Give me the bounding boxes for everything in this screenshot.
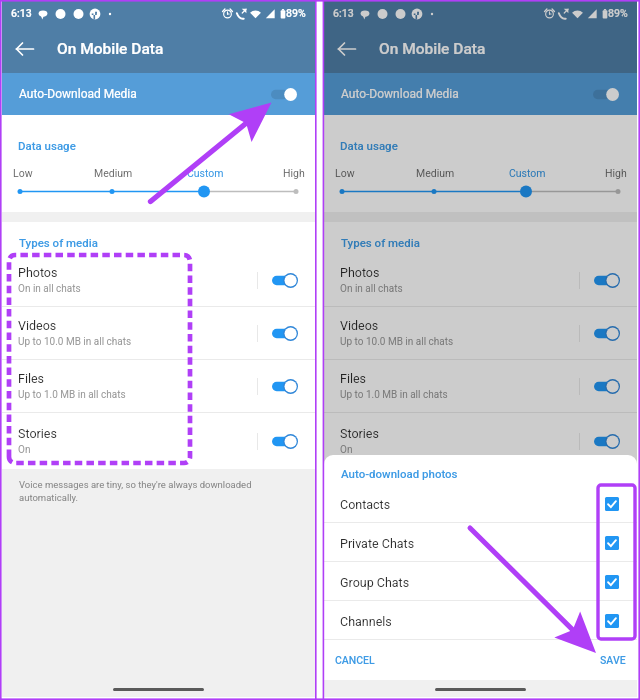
- button[interactable]: Files toggle: [594, 379, 620, 394]
- staticText: Videos: [18, 318, 57, 333]
- button[interactable]: Group Chats: [324, 562, 637, 600]
- staticText: Custom: [509, 167, 546, 179]
- staticText: On Mobile Data: [379, 40, 486, 58]
- staticText: Up to 1.0 MB in all chats: [340, 389, 448, 401]
- button[interactable]: Files toggle: [272, 379, 298, 394]
- button[interactable]: Auto-Download Media toggle: [593, 87, 619, 102]
- staticText: Auto-Download Media: [341, 87, 459, 101]
- staticText: High: [283, 167, 305, 179]
- button[interactable]: Photos toggle: [272, 273, 298, 288]
- staticText: Up to 10.0 MB in all chats: [340, 336, 454, 348]
- button[interactable]: Stories toggle: [272, 434, 298, 449]
- button[interactable]: Channels: [324, 601, 637, 639]
- staticText: Auto-Download Media: [19, 87, 137, 101]
- button[interactable]: Files: [2, 360, 315, 412]
- staticText: Types of media: [341, 236, 420, 249]
- button[interactable]: Videos toggle: [594, 326, 620, 341]
- button[interactable]: Auto-Download Media: [2, 73, 315, 115]
- button[interactable]: SAVE: [594, 648, 632, 672]
- staticText: Stories: [340, 426, 379, 441]
- staticText: 6:13: [11, 7, 32, 19]
- button[interactable]: CANCEL: [329, 648, 381, 672]
- button[interactable]: Files: [324, 360, 637, 412]
- staticText: Up to 1.0 MB in all chats: [18, 389, 126, 401]
- button[interactable]: Videos toggle: [272, 326, 298, 341]
- staticText: Group Chats: [340, 575, 605, 590]
- button[interactable]: Back: [8, 32, 42, 66]
- button[interactable]: Photos: [324, 254, 637, 306]
- staticText: CANCEL: [335, 654, 375, 666]
- staticText: Types of media: [19, 236, 98, 249]
- staticText: Up to 10.0 MB in all chats: [18, 336, 132, 348]
- staticText: High: [605, 167, 627, 179]
- button[interactable]: Private Chats: [324, 523, 637, 561]
- staticText: On in all chats: [340, 283, 403, 295]
- staticText: SAVE: [600, 654, 626, 666]
- staticText: Photos: [18, 265, 58, 280]
- button[interactable]: Channels checkbox: [605, 614, 619, 628]
- button[interactable]: Photos toggle: [594, 273, 620, 288]
- staticText: Medium: [416, 167, 455, 179]
- button[interactable]: Videos: [2, 307, 315, 359]
- staticText: Stories: [18, 426, 57, 441]
- staticText: Low: [335, 167, 355, 179]
- staticText: Medium: [94, 167, 133, 179]
- staticText: Channels: [340, 614, 605, 629]
- button[interactable]: Group Chats checkbox: [605, 575, 619, 589]
- staticText: Voice messages are tiny, so they're alwa…: [341, 479, 574, 504]
- button[interactable]: Private Chats checkbox: [605, 536, 619, 550]
- staticText: Data usage: [18, 139, 76, 152]
- button[interactable]: Photos: [2, 254, 315, 306]
- staticText: 89%: [608, 7, 628, 19]
- button[interactable]: Contacts checkbox: [605, 497, 619, 511]
- staticText: On: [18, 444, 31, 456]
- staticText: Auto-download photos: [341, 467, 458, 480]
- button[interactable]: Auto-Download Media: [324, 73, 637, 115]
- staticText: Low: [13, 167, 33, 179]
- staticText: Data usage: [340, 139, 398, 152]
- staticText: Voice messages are tiny, so they're alwa…: [19, 479, 252, 504]
- staticText: 6:13: [333, 7, 354, 19]
- staticText: On in all chats: [18, 283, 81, 295]
- button[interactable]: Back: [330, 32, 364, 66]
- button[interactable]: Stories toggle: [594, 434, 620, 449]
- staticText: Files: [18, 371, 45, 386]
- staticText: 89%: [286, 7, 306, 19]
- button[interactable]: Contacts: [324, 484, 637, 522]
- staticText: Videos: [340, 318, 379, 333]
- staticText: Custom: [187, 167, 224, 179]
- button[interactable]: Auto-Download Media toggle: [271, 87, 297, 102]
- button[interactable]: Videos: [324, 307, 637, 359]
- staticText: Files: [340, 371, 367, 386]
- staticText: Photos: [340, 265, 380, 280]
- staticText: On Mobile Data: [57, 40, 164, 58]
- staticText: Private Chats: [340, 536, 605, 551]
- staticText: On: [340, 444, 353, 456]
- staticText: Contacts: [340, 497, 605, 512]
- button[interactable]: Stories: [2, 413, 315, 469]
- button[interactable]: Stories: [324, 413, 637, 469]
